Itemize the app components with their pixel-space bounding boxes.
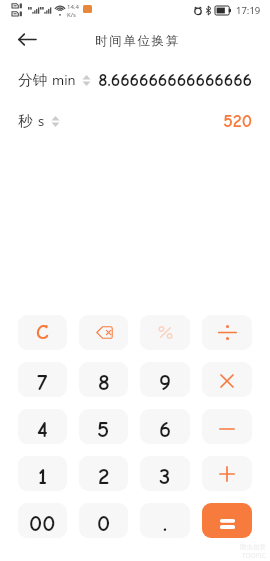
button[interactable]: Multiply	[202, 362, 252, 397]
staticText: 5	[97, 416, 110, 442]
staticText: s	[38, 112, 45, 130]
staticText: min	[52, 71, 76, 89]
staticText: 8.666666666666666	[98, 70, 252, 91]
button[interactable]: .	[140, 503, 190, 538]
button[interactable]: 5	[79, 409, 128, 444]
staticText: 4	[37, 416, 48, 442]
staticText: 1	[38, 463, 48, 489]
staticText: K/s	[67, 11, 76, 19]
button[interactable]: Percent	[140, 315, 190, 350]
button[interactable]: 1	[18, 456, 67, 491]
staticText: 0	[97, 510, 111, 536]
staticText: 分钟	[18, 71, 47, 89]
staticText: 秒	[18, 112, 33, 130]
button[interactable]: 0	[79, 503, 128, 538]
button[interactable]: Equals	[202, 503, 252, 538]
staticText: 图虫创意	[240, 543, 266, 551]
staticText: 17:19	[236, 4, 261, 17]
staticText: 时间单位换算	[95, 33, 180, 49]
button[interactable]: Back	[11, 23, 43, 55]
button[interactable]: 秒	[0, 110, 270, 132]
button[interactable]: 6	[140, 409, 190, 444]
button[interactable]: 4	[18, 409, 67, 444]
staticText: 3	[159, 463, 171, 489]
staticText: 9	[159, 369, 172, 395]
button[interactable]: 9	[140, 362, 190, 397]
staticText: C	[36, 320, 49, 344]
staticText: TOOPIC	[242, 551, 266, 560]
button[interactable]: Plus	[202, 456, 252, 491]
staticText: 14.4	[67, 3, 79, 11]
staticText: 8	[98, 369, 110, 395]
button[interactable]: 分钟	[0, 69, 270, 91]
staticText: 00	[29, 510, 56, 536]
button[interactable]: Minus	[202, 409, 252, 444]
staticText: .	[163, 510, 168, 536]
button[interactable]: 00	[18, 503, 67, 538]
button[interactable]: 7	[18, 362, 67, 397]
button[interactable]: 8	[79, 362, 128, 397]
button[interactable]: 2	[79, 456, 128, 491]
staticText: 7	[37, 369, 48, 395]
staticText: 6	[159, 416, 172, 442]
button[interactable]: Backspace	[79, 315, 128, 350]
button[interactable]: Divide	[202, 315, 252, 350]
staticText: 2	[98, 463, 110, 489]
staticText: 520	[223, 111, 252, 132]
button[interactable]: C	[18, 315, 67, 350]
button[interactable]: 3	[140, 456, 190, 491]
